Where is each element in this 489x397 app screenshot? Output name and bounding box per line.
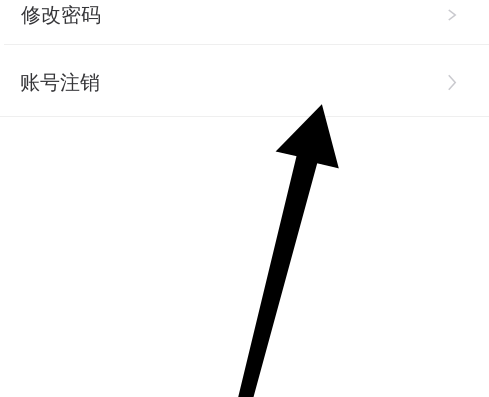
staticText: 账号注销	[20, 70, 100, 95]
button[interactable]: 账号注销	[0, 45, 489, 116]
staticText: 修改密码	[21, 3, 101, 27]
button[interactable]: 修改密码	[0, 0, 489, 44]
